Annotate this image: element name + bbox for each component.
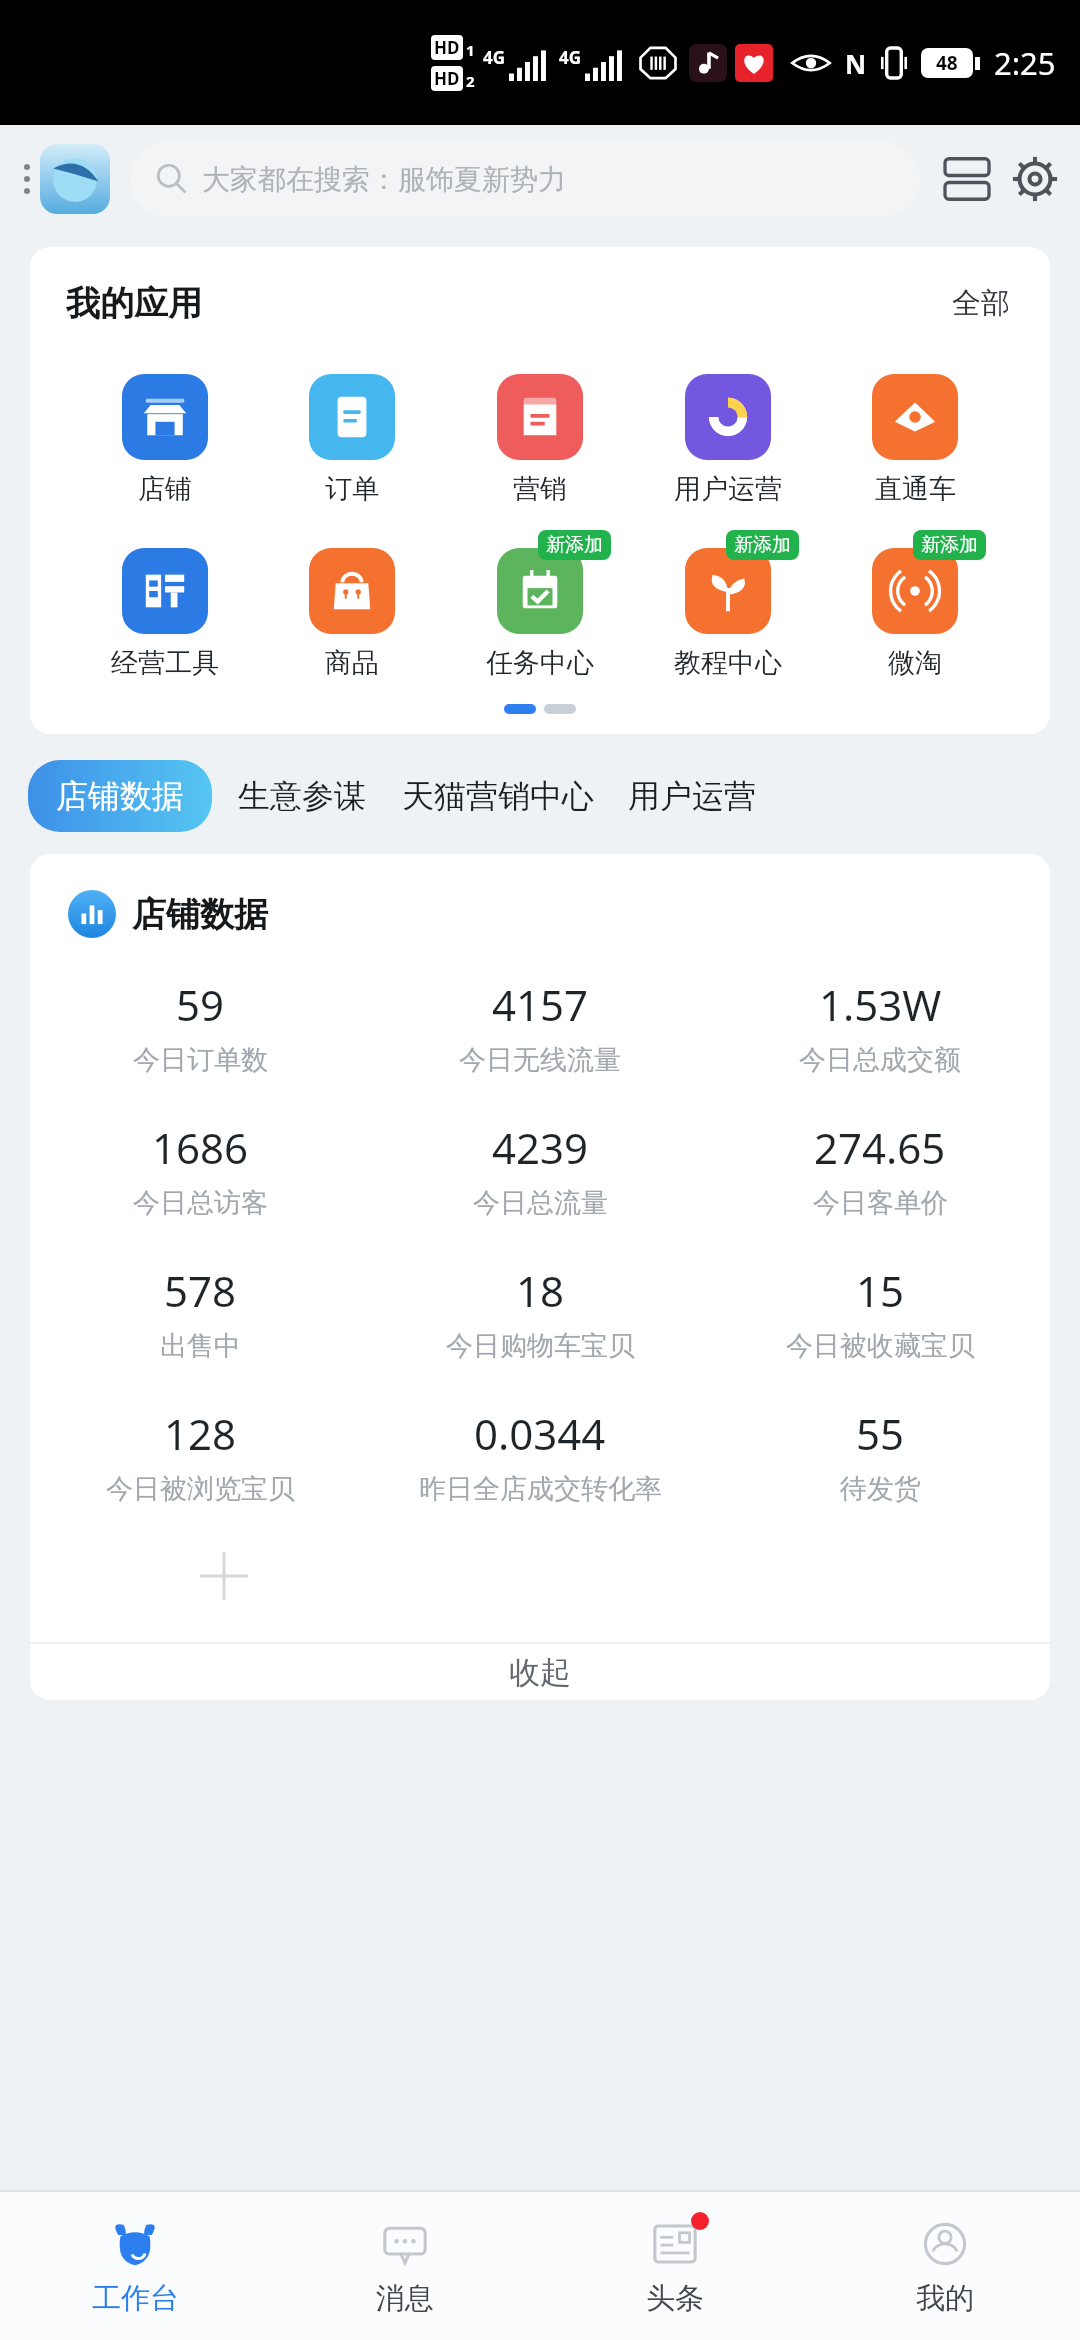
staticText: 59 xyxy=(176,976,225,1033)
staticText: 头条 xyxy=(646,2280,704,2317)
staticText: 今日无线流量 xyxy=(459,1043,621,1077)
staticText: 2:25 xyxy=(994,42,1056,84)
button[interactable]: 大家都在搜索：服饰夏新势力 xyxy=(130,141,920,217)
button[interactable]: 用户运营 xyxy=(618,760,766,832)
staticText: HD xyxy=(434,67,460,90)
staticText: 用户运营 xyxy=(628,776,756,816)
staticText: 大家都在搜索：服饰夏新势力 xyxy=(202,162,566,197)
staticText: 今日客单价 xyxy=(813,1186,948,1220)
staticText: 天猫营销中心 xyxy=(402,776,594,816)
button[interactable]: 消息 xyxy=(270,2192,540,2340)
staticText: 今日总访客 xyxy=(133,1186,268,1220)
staticText: 经营工具 xyxy=(111,646,219,680)
button[interactable]: More options xyxy=(14,164,40,194)
button[interactable]: 店铺 xyxy=(102,356,228,506)
button[interactable]: 天猫营销中心 xyxy=(390,760,606,832)
staticText: 4157 xyxy=(492,976,589,1033)
staticText: 昨日全店成交转化率 xyxy=(419,1472,662,1506)
staticText: 274.65 xyxy=(814,1119,946,1176)
staticText: 店铺数据 xyxy=(56,776,184,816)
staticText: 今日订单数 xyxy=(133,1043,268,1077)
staticText: 今日总成交额 xyxy=(799,1043,961,1077)
staticText: 出售中 xyxy=(160,1329,241,1363)
staticText: 教程中心 xyxy=(674,646,782,680)
staticText: 55 xyxy=(856,1405,905,1462)
button[interactable]: 订单 xyxy=(289,356,415,506)
button[interactable]: 1.53W xyxy=(710,976,1050,1077)
staticText: 15 xyxy=(856,1262,905,1319)
staticText: 新添加 xyxy=(921,533,978,557)
button[interactable]: 4157 xyxy=(370,976,710,1077)
staticText: 新添加 xyxy=(546,533,603,557)
button[interactable]: 578 xyxy=(30,1262,370,1363)
button[interactable]: 营销 xyxy=(477,356,603,506)
staticText: 商品 xyxy=(325,646,379,680)
staticText: 48 xyxy=(936,50,958,76)
staticText: 今日购物车宝贝 xyxy=(446,1329,635,1363)
button[interactable]: 收起 xyxy=(30,1644,1050,1700)
button[interactable]: 商品 xyxy=(289,530,415,680)
staticText: 全部 xyxy=(952,285,1010,322)
staticText: 1 xyxy=(466,40,475,60)
button[interactable]: 新添加 xyxy=(852,530,978,680)
button[interactable]: Assistant xyxy=(40,144,110,214)
staticText: 直通车 xyxy=(875,472,956,506)
button[interactable]: 生意参谋 xyxy=(226,760,378,832)
button[interactable]: 1686 xyxy=(30,1119,370,1220)
button[interactable]: 4239 xyxy=(370,1119,710,1220)
staticText: 1.53W xyxy=(819,976,942,1033)
button[interactable]: 18 xyxy=(370,1262,710,1363)
staticText: 578 xyxy=(164,1262,237,1319)
staticText: 收起 xyxy=(509,1653,571,1692)
staticText: 店铺数据 xyxy=(132,893,268,936)
staticText: 今日被收藏宝贝 xyxy=(786,1329,975,1363)
button[interactable]: 店铺数据 xyxy=(28,760,212,832)
staticText: 128 xyxy=(164,1405,237,1462)
staticText: 4G xyxy=(483,46,506,69)
staticText: 微淘 xyxy=(888,646,942,680)
button[interactable]: 头条 xyxy=(540,2192,810,2340)
staticText: 工作台 xyxy=(92,2280,179,2317)
staticText: 我的应用 xyxy=(66,282,202,325)
staticText: 消息 xyxy=(376,2280,434,2317)
button[interactable]: 全部 xyxy=(948,281,1014,326)
staticText: 18 xyxy=(516,1262,565,1319)
button[interactable]: 55 xyxy=(710,1405,1050,1506)
button[interactable]: 新添加 xyxy=(477,530,603,680)
staticText: 用户运营 xyxy=(674,472,782,506)
button[interactable]: 新添加 xyxy=(665,530,791,680)
staticText: 待发货 xyxy=(840,1472,921,1506)
staticText: 生意参谋 xyxy=(238,776,366,816)
button[interactable]: Split screen xyxy=(936,148,998,210)
staticText: 任务中心 xyxy=(486,646,594,680)
button[interactable]: 274.65 xyxy=(710,1119,1050,1220)
staticText: 2 xyxy=(466,71,475,91)
staticText: N xyxy=(845,46,867,81)
button[interactable]: 直通车 xyxy=(852,356,978,506)
staticText: 我的 xyxy=(916,2280,974,2317)
staticText: 新添加 xyxy=(734,533,791,557)
button[interactable]: 59 xyxy=(30,976,370,1077)
button[interactable]: 经营工具 xyxy=(102,530,228,680)
staticText: 1686 xyxy=(152,1119,249,1176)
button[interactable]: 128 xyxy=(30,1405,370,1506)
staticText: 订单 xyxy=(325,472,379,506)
staticText: 0.0344 xyxy=(474,1405,606,1462)
staticText: 4239 xyxy=(492,1119,589,1176)
staticText: 今日被浏览宝贝 xyxy=(106,1472,295,1506)
staticText: 营销 xyxy=(513,472,567,506)
staticText: 4G xyxy=(559,46,582,69)
button[interactable]: Settings xyxy=(1004,148,1066,210)
staticText: 今日总流量 xyxy=(473,1186,608,1220)
staticText: HD xyxy=(434,36,460,59)
button[interactable]: 15 xyxy=(710,1262,1050,1363)
button[interactable]: 我的 xyxy=(810,2192,1080,2340)
button[interactable]: 0.0344 xyxy=(370,1405,710,1506)
button[interactable]: 工作台 xyxy=(0,2192,270,2340)
button[interactable]: 用户运营 xyxy=(665,356,791,506)
staticText: 店铺 xyxy=(138,472,192,506)
